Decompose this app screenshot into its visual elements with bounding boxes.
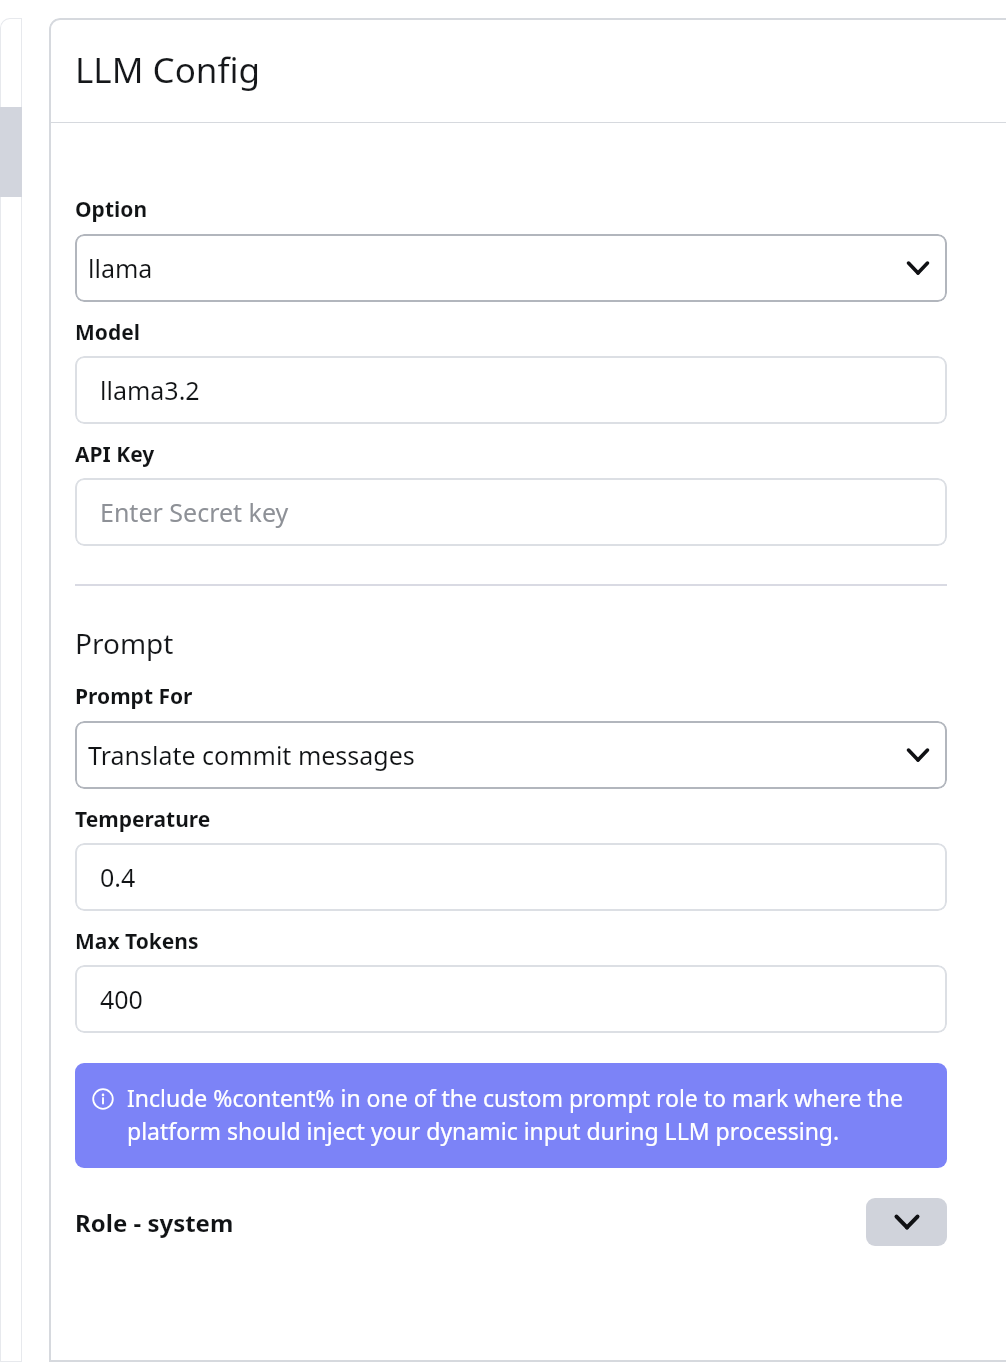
staticText: Include %content% in one of the custom p… xyxy=(127,1082,929,1147)
staticText: Prompt For xyxy=(75,682,193,711)
staticText: Model xyxy=(75,318,140,347)
staticText: Max Tokens xyxy=(75,927,199,956)
staticText: llama3.2 xyxy=(100,373,200,407)
staticText: LLM Config xyxy=(75,46,261,94)
button[interactable]: llama3.2 xyxy=(75,356,947,424)
button[interactable]: Enter Secret key xyxy=(75,478,947,546)
button[interactable]: Prompt For xyxy=(75,721,947,789)
staticText: Translate commit messages xyxy=(88,738,415,772)
button[interactable]: 400 xyxy=(75,965,947,1033)
staticText: Option xyxy=(75,195,148,224)
button[interactable]: Expand role system xyxy=(866,1198,947,1246)
staticText: 400 xyxy=(100,982,143,1016)
staticText: API Key xyxy=(75,440,155,469)
staticText: Prompt xyxy=(75,624,174,662)
staticText: llama xyxy=(88,251,153,285)
button[interactable]: 0.4 xyxy=(75,843,947,911)
staticText: Temperature xyxy=(75,805,211,834)
staticText: Enter Secret key xyxy=(100,495,289,529)
staticText: Role - system xyxy=(75,1206,234,1239)
staticText: 0.4 xyxy=(100,860,136,894)
button[interactable]: Option xyxy=(75,234,947,302)
